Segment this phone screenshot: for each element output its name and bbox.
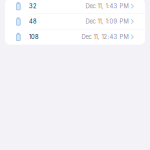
staticText: Dec 11, 12:43 PM bbox=[81, 33, 128, 40]
button[interactable]: 32 bbox=[5, 0, 145, 14]
staticText: 32 bbox=[29, 3, 36, 10]
staticText: Dec 11, 1:43 PM bbox=[85, 3, 128, 10]
staticText: 108 bbox=[29, 33, 39, 40]
staticText: 48 bbox=[29, 18, 37, 25]
staticText: Dec 11, 1:09 PM bbox=[85, 18, 128, 25]
button[interactable]: 108 bbox=[5, 29, 145, 45]
button[interactable]: 48 bbox=[5, 14, 145, 29]
